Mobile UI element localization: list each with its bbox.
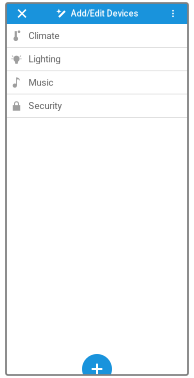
button[interactable]: Close [10,3,34,23]
button[interactable]: Security [6,95,188,118]
button[interactable]: Lighting [6,48,188,71]
staticText: Climate [28,30,59,41]
button[interactable]: Music [6,71,188,95]
staticText: Security [28,100,61,111]
button[interactable]: Climate [6,25,188,48]
button[interactable]: Add device [82,354,112,378]
staticText: Lighting [28,54,60,65]
staticText: Add/Edit Devices [71,8,138,19]
button[interactable]: More options [162,3,184,23]
staticText: Music [28,77,53,88]
